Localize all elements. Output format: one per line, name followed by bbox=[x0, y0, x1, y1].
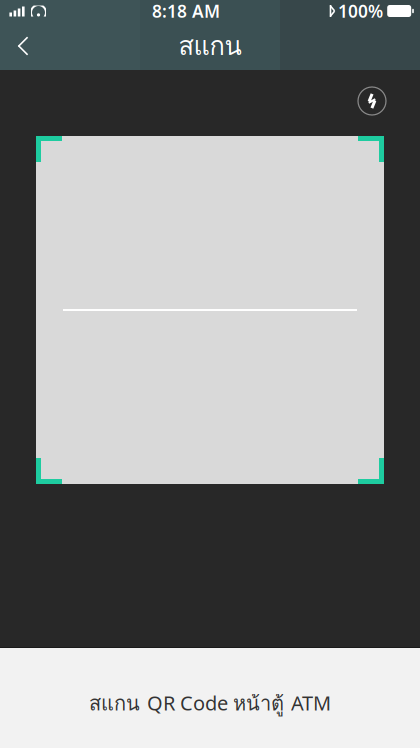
staticText: 8:18 AM bbox=[152, 0, 220, 22]
staticText: สแกน QR Code หน้าตู้ ATM bbox=[89, 688, 331, 719]
staticText: 100% bbox=[338, 0, 383, 22]
staticText: สแกน bbox=[178, 26, 241, 66]
button[interactable]: Back bbox=[0, 22, 46, 70]
button[interactable]: Toggle flash bbox=[350, 79, 394, 123]
